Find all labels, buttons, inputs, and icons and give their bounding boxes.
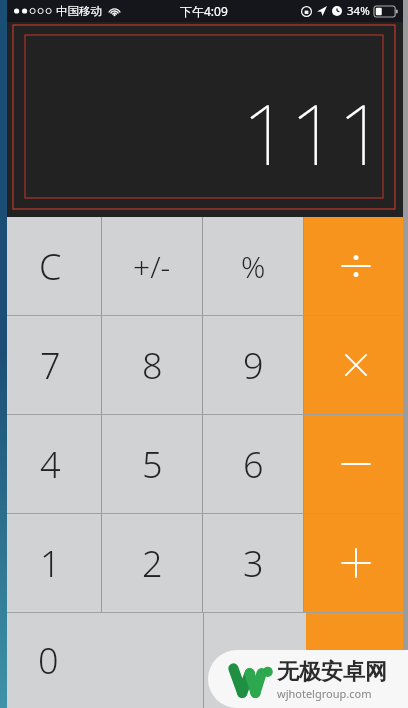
staticText: 9 — [243, 341, 264, 390]
button[interactable]: 1 — [0, 514, 101, 612]
button[interactable]: Subtract — [304, 415, 408, 513]
staticText: 34% — [347, 3, 370, 19]
button[interactable]: % — [203, 217, 303, 315]
button[interactable]: 3 — [203, 514, 303, 612]
button[interactable]: Equals — [306, 613, 408, 708]
staticText: 2 — [142, 539, 163, 588]
button[interactable]: 7 — [0, 316, 101, 414]
staticText: 111 — [242, 75, 386, 189]
staticText: +/- — [133, 246, 171, 287]
staticText: C — [39, 242, 62, 291]
staticText: 1 — [40, 539, 61, 588]
button[interactable]: 4 — [0, 415, 101, 513]
staticText: 中国移动 — [56, 4, 102, 18]
staticText: 3 — [243, 539, 264, 588]
staticText: % — [241, 246, 266, 287]
button[interactable]: 2 — [102, 514, 202, 612]
staticText: 5 — [142, 440, 163, 489]
button[interactable] — [204, 613, 306, 708]
button[interactable]: Multiply — [304, 316, 408, 414]
button[interactable]: Divide — [304, 217, 408, 315]
staticText: 下午4:09 — [180, 3, 228, 19]
staticText: wjhotelgroup.com — [277, 686, 372, 701]
button[interactable]: 5 — [102, 415, 202, 513]
button[interactable]: 6 — [203, 415, 303, 513]
button[interactable]: Add — [304, 514, 408, 612]
staticText: 4 — [40, 440, 61, 489]
staticText: 无极安卓网 — [277, 658, 387, 686]
staticText: 8 — [142, 341, 163, 390]
button[interactable]: +/- — [102, 217, 202, 315]
staticText: 0 — [38, 636, 59, 685]
staticText: 6 — [243, 440, 264, 489]
button[interactable]: 0 — [0, 613, 203, 708]
button[interactable]: 8 — [102, 316, 202, 414]
button[interactable]: 9 — [203, 316, 303, 414]
button[interactable]: C — [0, 217, 101, 315]
staticText: 7 — [40, 341, 61, 390]
